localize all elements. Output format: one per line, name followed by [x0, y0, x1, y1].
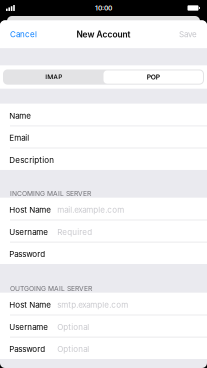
staticText: Required	[57, 227, 92, 237]
button[interactable]: Save	[173, 20, 207, 48]
staticText: Password	[9, 344, 45, 354]
staticText: Description	[9, 155, 54, 165]
staticText: INCOMING MAIL SERVER	[10, 190, 91, 198]
button[interactable]: Password	[0, 242, 207, 264]
staticText: Username	[9, 227, 48, 237]
button[interactable]: Description	[0, 148, 207, 170]
button[interactable]: Username	[0, 220, 207, 242]
staticText: Host Name	[9, 205, 51, 215]
button[interactable]: Email	[0, 126, 207, 148]
staticText: Cancel	[10, 30, 37, 39]
button[interactable]: Name	[0, 104, 207, 126]
staticText: mail.example.com	[57, 205, 124, 215]
staticText: New Account	[76, 29, 130, 39]
staticText: Username	[9, 322, 48, 332]
staticText: Optional	[57, 344, 89, 354]
button[interactable]: IMAP	[4, 70, 103, 84]
staticText: Host Name	[9, 300, 51, 310]
staticText: smtp.example.com	[57, 300, 128, 310]
staticText: IMAP	[45, 73, 62, 81]
button[interactable]: Host Name	[0, 293, 207, 315]
button[interactable]: Password	[0, 337, 207, 359]
staticText: Password	[9, 249, 45, 259]
staticText: 10:00	[95, 4, 112, 12]
staticText: Save	[179, 30, 197, 39]
button[interactable]: Cancel	[0, 20, 43, 48]
staticText: OUTGOING MAIL SERVER	[10, 285, 92, 293]
staticText: Name	[9, 111, 31, 121]
staticText: POP	[147, 73, 160, 81]
staticText: Email	[9, 133, 29, 143]
button[interactable]: Username	[0, 315, 207, 337]
staticText: Optional	[57, 322, 89, 332]
button[interactable]: POP	[103, 70, 203, 84]
button[interactable]: Host Name	[0, 198, 207, 220]
